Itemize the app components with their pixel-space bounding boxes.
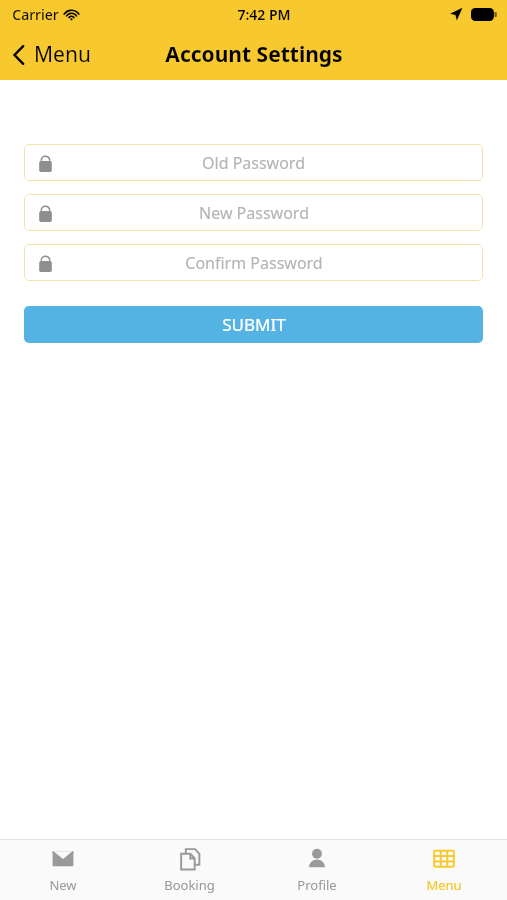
button[interactable]: Menu [0,34,103,75]
button[interactable]: Confirm Password [24,244,483,281]
staticText: Carrier [12,5,59,24]
button[interactable]: New Password [24,194,483,231]
staticText: Booking [164,876,215,894]
staticText: New Password [199,202,309,224]
staticText: New [49,876,77,894]
button[interactable]: Booking [126,839,253,900]
button[interactable]: Menu [380,839,507,900]
button[interactable]: SUBMIT [24,306,483,343]
staticText: Account Settings [165,40,343,69]
staticText: SUBMIT [222,313,286,336]
staticText: Old Password [202,152,305,174]
staticText: Menu [426,876,462,894]
staticText: 7:42 PM [237,5,291,24]
staticText: Confirm Password [185,252,323,274]
staticText: Menu [34,40,91,69]
button[interactable]: Old Password [24,144,483,181]
staticText: Profile [297,876,337,894]
button[interactable]: Profile [253,839,380,900]
button[interactable]: New [0,839,126,900]
